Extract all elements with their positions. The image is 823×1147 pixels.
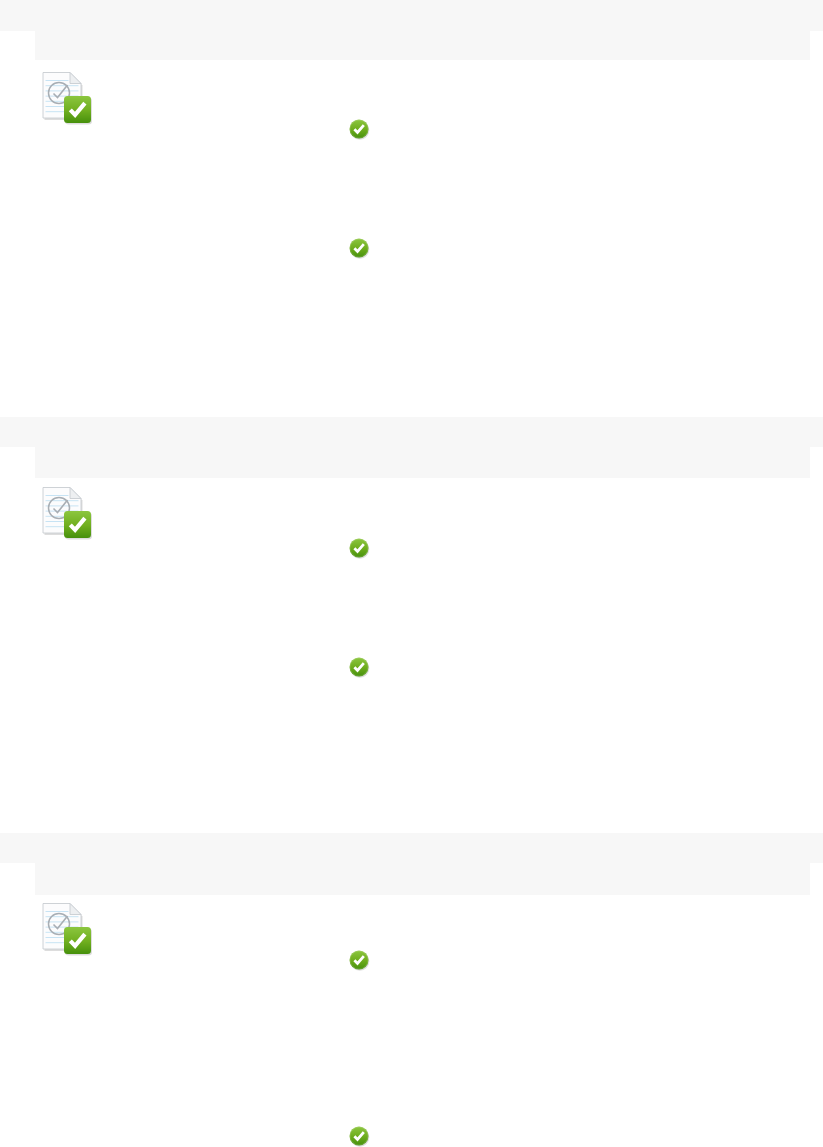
button[interactable]: Verified item 2	[348, 656, 370, 678]
button[interactable]: Verified item 1	[348, 949, 370, 971]
button[interactable]: Verified item 2	[348, 1125, 370, 1147]
button[interactable]: Verified item 1	[348, 537, 370, 559]
button[interactable]: Verified item 2	[348, 237, 370, 259]
button[interactable]: Verified item 1	[348, 118, 370, 140]
button[interactable]: Completed document	[42, 487, 92, 537]
button[interactable]: Completed document	[42, 72, 92, 122]
button[interactable]: Completed document	[42, 903, 92, 953]
